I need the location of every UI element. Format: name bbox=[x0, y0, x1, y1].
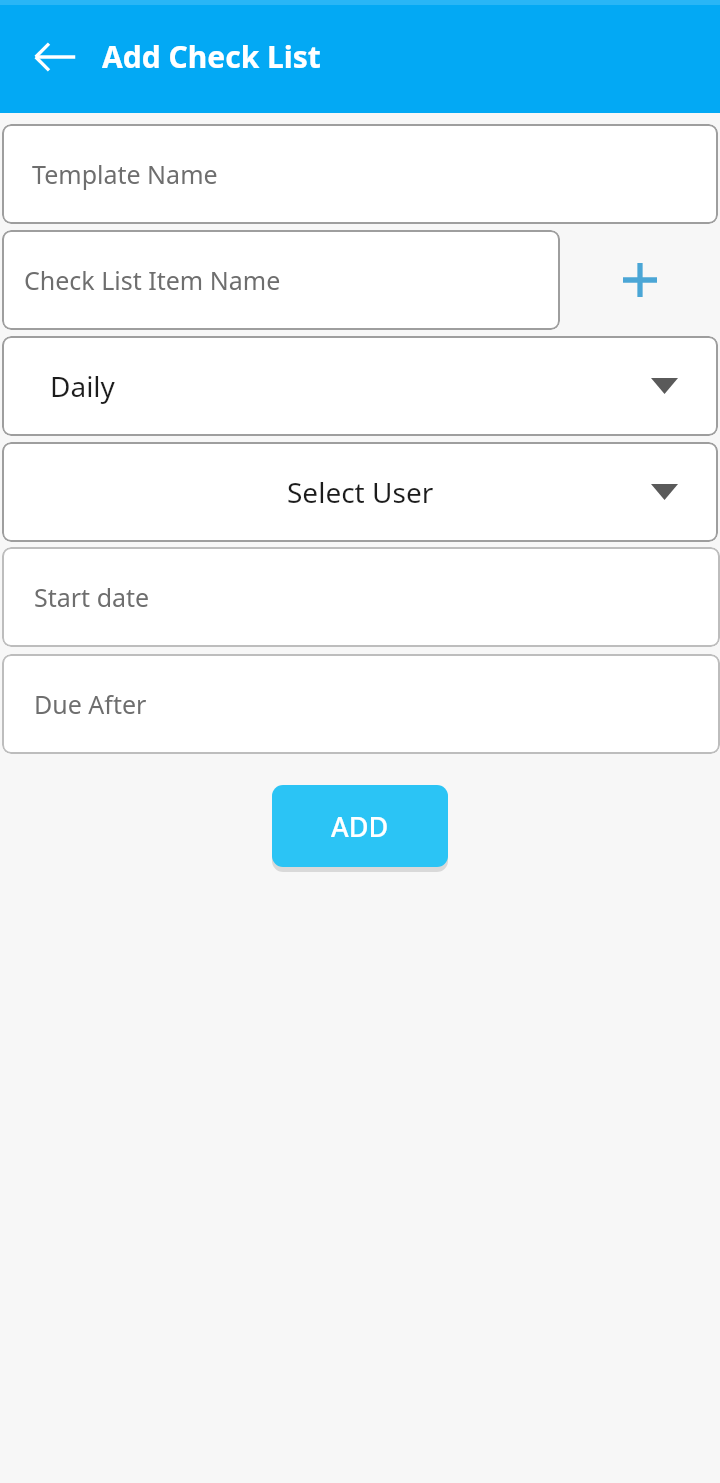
button[interactable]: Due After bbox=[2, 654, 720, 754]
button[interactable]: Daily bbox=[2, 336, 718, 436]
staticText: Daily bbox=[50, 367, 115, 405]
staticText: Select User bbox=[287, 473, 434, 511]
staticText: Check List Item Name bbox=[24, 263, 281, 297]
button[interactable]: Back bbox=[20, 22, 90, 92]
staticText: ADD bbox=[331, 808, 389, 845]
button[interactable]: Check List Item Name bbox=[2, 230, 560, 330]
staticText: Due After bbox=[34, 687, 147, 721]
button[interactable]: Add check list item bbox=[560, 230, 720, 330]
button[interactable]: Template Name bbox=[2, 124, 718, 224]
button[interactable]: Select User bbox=[2, 442, 718, 542]
staticText: Start date bbox=[34, 580, 150, 614]
staticText: Template Name bbox=[32, 157, 218, 191]
staticText: Add Check List bbox=[102, 36, 321, 77]
button[interactable]: Start date bbox=[2, 547, 720, 647]
button[interactable]: ADD bbox=[272, 785, 448, 867]
